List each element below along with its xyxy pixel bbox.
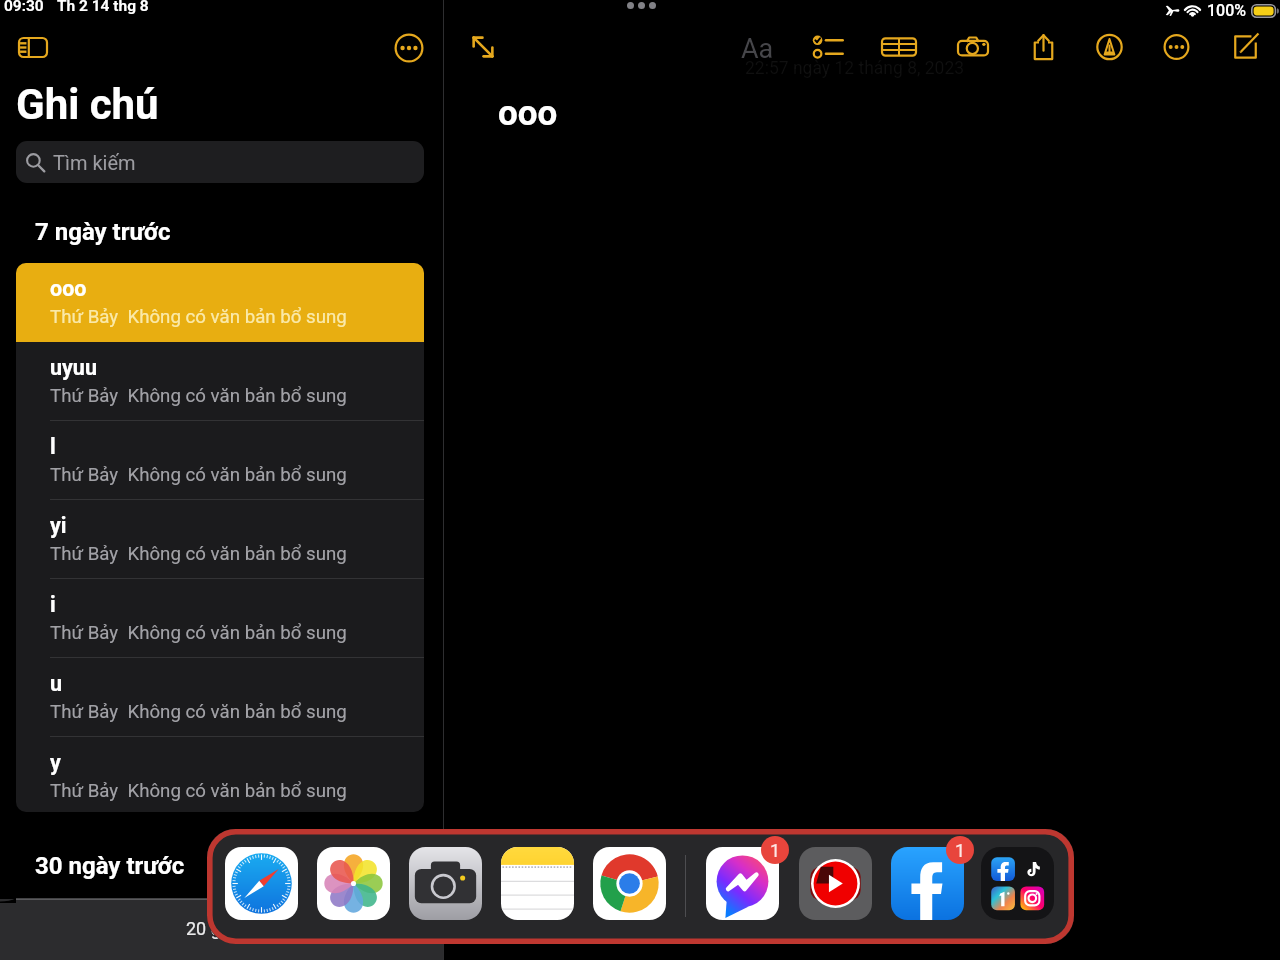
staticText: u (50, 671, 63, 696)
button[interactable]: More options (384, 27, 434, 68)
button[interactable]: Camera (950, 26, 996, 68)
staticText: Aa (741, 33, 774, 65)
button[interactable]: ooo (16, 263, 424, 342)
staticText: Thứ Bảy Không có văn bản bổ sung (50, 464, 347, 486)
button[interactable]: Share (1020, 26, 1066, 68)
staticText: Thứ Bảy Không có văn bản bổ sung (50, 622, 347, 644)
staticText: Thứ Bảy Không có văn bản bổ sung (50, 306, 347, 328)
button[interactable]: y (16, 737, 424, 812)
staticText: 100% (1207, 1, 1247, 20)
button[interactable]: Camera (409, 847, 482, 920)
button[interactable]: u (16, 658, 424, 737)
staticText: 09:30 (4, 0, 44, 15)
staticText: uyuu (50, 355, 97, 380)
button[interactable]: i (16, 579, 424, 658)
staticText: i (50, 592, 56, 617)
staticText: Thứ Bảy Không có văn bản bổ sung (50, 385, 347, 407)
staticText: 1 (770, 840, 781, 861)
staticText: Th 2 14 thg 8 (57, 0, 149, 15)
button[interactable]: Chrome (593, 847, 666, 920)
button[interactable]: Facebook (891, 847, 964, 920)
staticText: Tìm kiếm (53, 151, 136, 174)
button[interactable]: Tìm kiếm (16, 141, 424, 183)
staticText: Thứ Bảy Không có văn bản bổ sung (50, 701, 347, 723)
button[interactable]: Markup (1086, 26, 1132, 68)
staticText: Ghi chú (16, 80, 159, 129)
button[interactable]: New note (1222, 26, 1268, 68)
staticText: Thứ Bảy Không có văn bản bổ sung (50, 780, 347, 802)
button[interactable]: Notes (501, 847, 574, 920)
staticText: ooo (50, 276, 87, 301)
button[interactable]: uyuu (16, 342, 424, 421)
button[interactable]: YouTube (799, 847, 872, 920)
button[interactable]: Expand note (458, 26, 508, 68)
staticText: y (50, 750, 61, 775)
staticText: yi (50, 513, 67, 538)
button[interactable]: Messenger (706, 847, 779, 920)
button[interactable]: Safari (225, 847, 298, 920)
button[interactable]: Social apps folder (981, 847, 1054, 920)
staticText: Thứ Bảy Không có văn bản bổ sung (50, 543, 347, 565)
staticText: 7 ngày trước (35, 218, 171, 246)
staticText: 1 (955, 840, 966, 861)
button[interactable]: Table (876, 26, 922, 68)
button[interactable]: Text format (729, 28, 785, 70)
staticText: ooo (498, 93, 558, 134)
button[interactable]: Show sidebar (8, 27, 58, 68)
button[interactable]: More (1153, 26, 1199, 68)
button[interactable]: Checklist (804, 26, 850, 68)
staticText: l (50, 434, 56, 459)
staticText: 30 ngày trước (35, 852, 185, 880)
button[interactable]: l (16, 421, 424, 500)
button[interactable]: Photos (317, 847, 390, 920)
staticText: 22:57 ngày 12 tháng 8, 2023 (745, 58, 965, 79)
staticText: 20 g... (186, 918, 236, 939)
button[interactable]: yi (16, 500, 424, 579)
